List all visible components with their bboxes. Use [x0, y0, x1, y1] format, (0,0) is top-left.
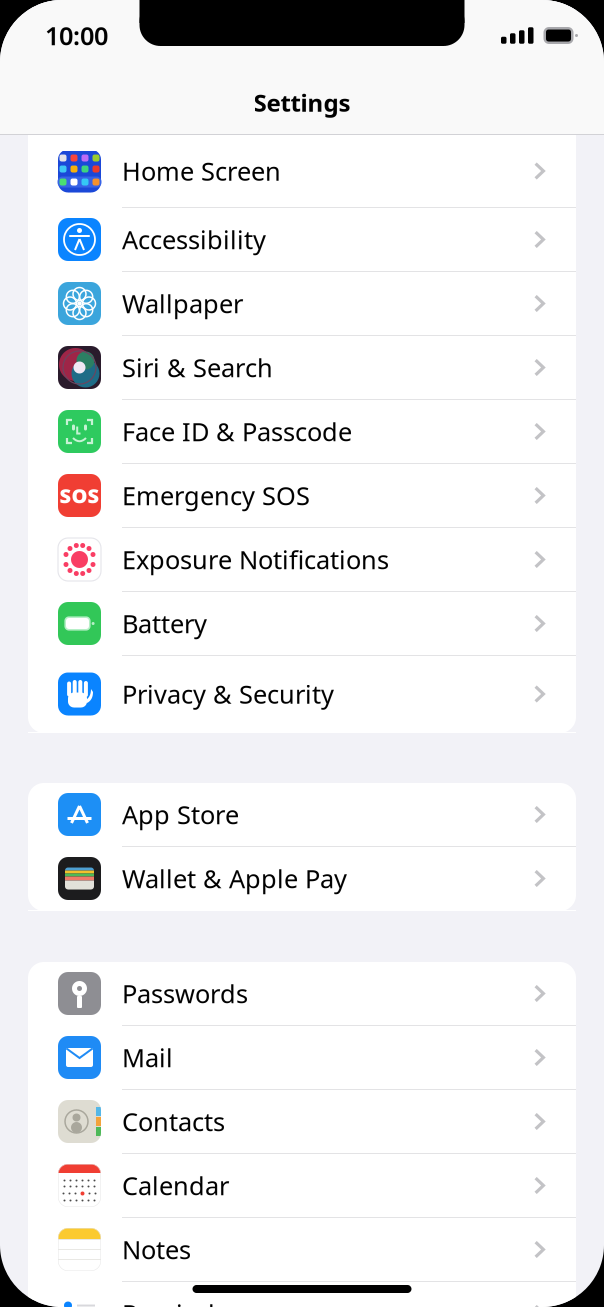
button[interactable]: Mail: [28, 1026, 576, 1090]
button[interactable]: Face ID & Passcode: [28, 400, 576, 464]
button[interactable]: Contacts: [28, 1090, 576, 1154]
button[interactable]: App Store: [28, 783, 576, 847]
button[interactable]: Notes: [28, 1218, 576, 1282]
staticText: SOS: [59, 482, 99, 509]
staticText: Wallet & Apple Pay: [122, 862, 347, 895]
button[interactable]: Accessibility: [28, 208, 576, 272]
staticText: Contacts: [122, 1105, 225, 1138]
staticText: Settings: [253, 87, 350, 118]
button[interactable]: Wallet & Apple Pay: [28, 847, 576, 911]
staticText: Battery: [122, 607, 207, 640]
staticText: App Store: [122, 798, 239, 831]
button[interactable]: Privacy & Security: [28, 656, 576, 733]
staticText: Face ID & Passcode: [122, 415, 352, 448]
staticText: Emergency SOS: [122, 479, 310, 512]
button[interactable]: Home Screen: [28, 135, 576, 208]
staticText: Home Screen: [122, 154, 281, 188]
staticText: Notes: [122, 1233, 191, 1266]
button[interactable]: Calendar: [28, 1154, 576, 1218]
button[interactable]: Wallpaper: [28, 272, 576, 336]
staticText: Passwords: [122, 977, 248, 1010]
staticText: Calendar: [122, 1169, 229, 1202]
staticText: Exposure Notifications: [122, 543, 389, 576]
staticText: Accessibility: [122, 223, 266, 256]
staticText: Reminders: [122, 1297, 251, 1307]
staticText: 10:00: [45, 19, 108, 52]
staticText: Mail: [122, 1041, 173, 1074]
button[interactable]: Exposure Notifications: [28, 528, 576, 592]
button[interactable]: Siri & Search: [28, 336, 576, 400]
button[interactable]: Battery: [28, 592, 576, 656]
staticText: Wallpaper: [122, 287, 243, 320]
button[interactable]: Passwords: [28, 962, 576, 1026]
staticText: Privacy & Security: [122, 677, 334, 711]
button[interactable]: Reminders: [28, 1282, 576, 1307]
button[interactable]: SOS: [28, 464, 576, 528]
staticText: Siri & Search: [122, 351, 273, 384]
